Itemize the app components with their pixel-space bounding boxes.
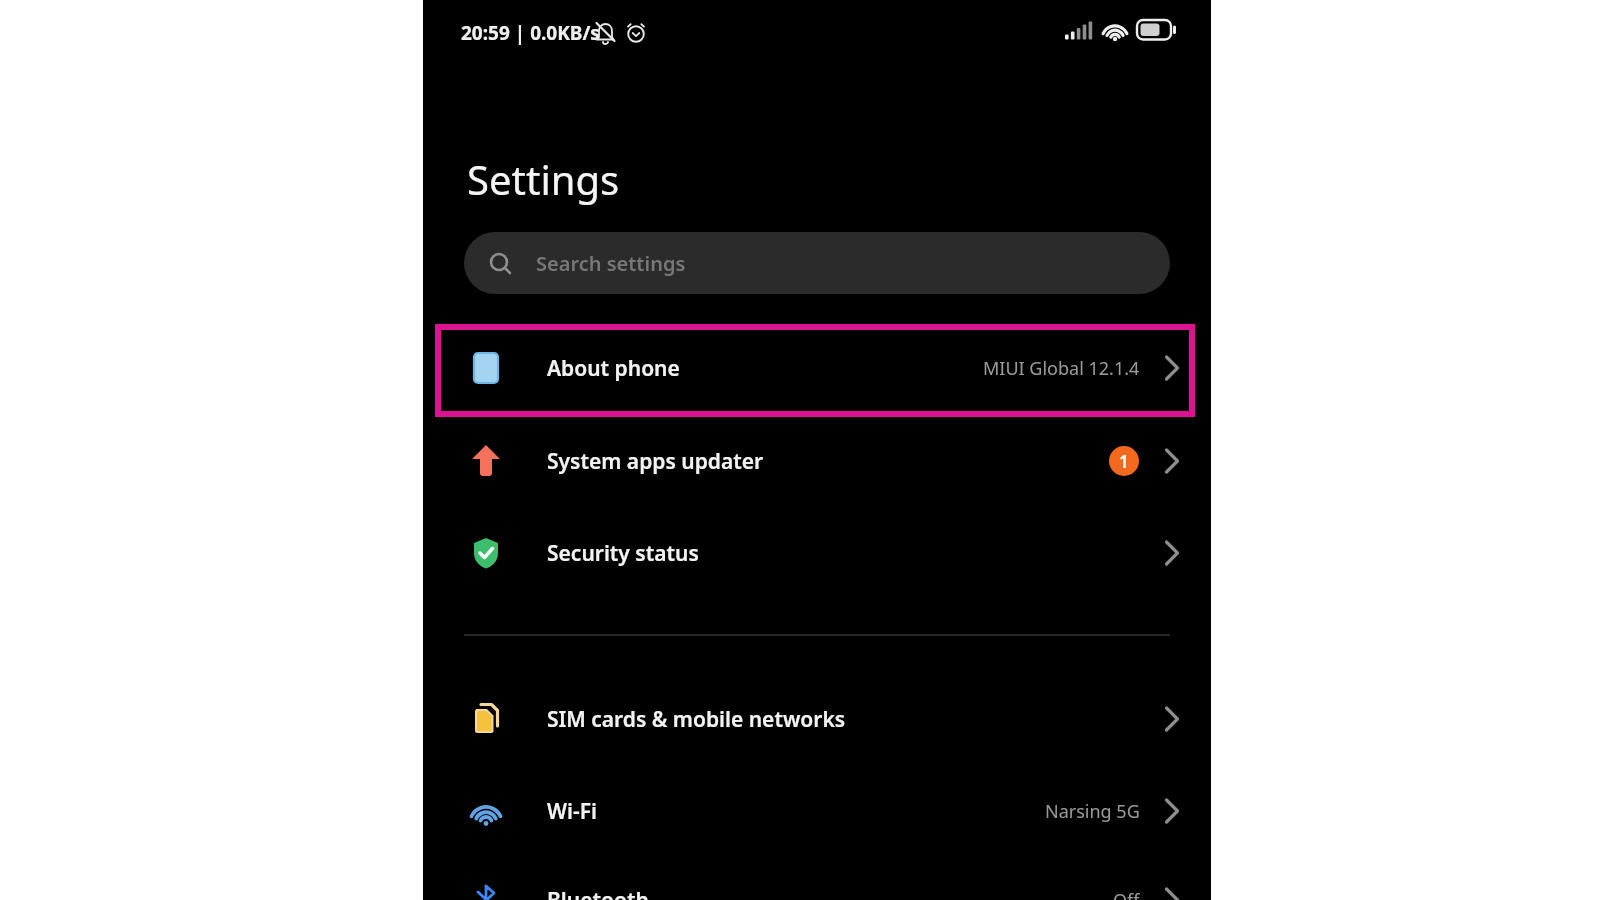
staticText: Search settings <box>536 250 686 277</box>
staticText: Security status <box>547 539 699 568</box>
staticText: System apps updater <box>547 447 764 476</box>
button[interactable]: About phone <box>423 322 1211 414</box>
button[interactable]: SIM cards & mobile networks <box>423 673 1211 765</box>
staticText: SIM cards & mobile networks <box>547 705 846 734</box>
staticText: MIUI Global 12.1.4 <box>983 356 1140 381</box>
button[interactable]: System apps updater <box>423 415 1211 507</box>
button[interactable]: Search settings <box>464 232 1170 294</box>
staticText: About phone <box>547 354 680 383</box>
button[interactable]: Wi-Fi <box>423 765 1211 857</box>
staticText: 20:59 | 0.0KB/s <box>461 20 600 46</box>
staticText: Narsing 5G <box>1045 799 1140 824</box>
button[interactable]: Bluetooth <box>423 854 1211 900</box>
staticText: Wi-Fi <box>547 797 597 826</box>
staticText: Off <box>1113 888 1140 900</box>
staticText: Settings <box>467 152 620 206</box>
staticText: 1 <box>1119 450 1129 473</box>
button[interactable]: Security status <box>423 507 1211 599</box>
staticText: Bluetooth <box>547 886 649 900</box>
